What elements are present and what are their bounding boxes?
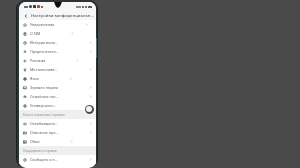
staticText: История вызовов (звонки и сообщения) bbox=[30, 40, 59, 45]
button[interactable]: Зеркало экрана bbox=[19, 83, 96, 92]
staticText: Освобождение места bbox=[30, 121, 59, 126]
staticText: Реклама bbox=[30, 58, 46, 63]
staticText: Настройки конфиденциальности bbox=[31, 13, 96, 19]
button[interactable]: Универсальный доступ bbox=[19, 101, 96, 110]
staticText: Зеркало экрана bbox=[30, 85, 59, 90]
button[interactable]: Язык bbox=[19, 74, 96, 83]
button[interactable]: О SIM bbox=[19, 29, 96, 38]
staticText: Местоположение bbox=[30, 67, 59, 72]
button[interactable]: Реклама bbox=[19, 56, 96, 65]
button[interactable]: Описание профиля bbox=[19, 128, 96, 137]
button[interactable]: Сообщить о проблеме bbox=[19, 155, 96, 164]
staticText: О SIM bbox=[30, 31, 41, 36]
button[interactable]: Освобождение места bbox=[19, 119, 96, 128]
staticText: Сообщить о проблеме bbox=[30, 157, 59, 162]
staticText: Семейные настройки bbox=[30, 94, 59, 99]
button[interactable]: Семейные настройки bbox=[19, 92, 96, 101]
staticText: Описание профиля bbox=[30, 130, 59, 135]
staticText: Предпочтительный контакт bbox=[30, 49, 59, 54]
staticText: Обои bbox=[30, 139, 40, 144]
staticText: Блок и локальные сервисы bbox=[23, 113, 65, 117]
button[interactable]: Местоположение bbox=[19, 65, 96, 74]
button[interactable]: Обои bbox=[19, 137, 96, 146]
button[interactable]: История вызовов (звонки и сообщения) bbox=[19, 38, 96, 47]
staticText: Уведомления bbox=[30, 22, 55, 27]
staticText: Универсальный доступ bbox=[30, 103, 59, 108]
staticText: Поддержка и справка bbox=[23, 149, 57, 153]
staticText: Язык bbox=[30, 76, 39, 81]
button[interactable]: Предпочтительный контакт bbox=[19, 47, 96, 56]
button[interactable]: Назад bbox=[22, 12, 29, 19]
button[interactable]: Уведомления bbox=[19, 20, 96, 29]
